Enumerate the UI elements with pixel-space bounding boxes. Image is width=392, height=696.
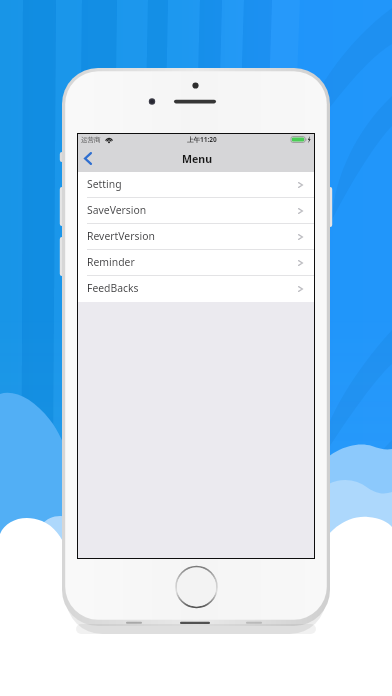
staticText: 上午11:20 — [187, 135, 217, 144]
button[interactable]: FeedBacks — [78, 276, 314, 302]
staticText: FeedBacks — [87, 281, 139, 295]
button[interactable]: Setting — [78, 172, 314, 198]
staticText: Setting — [87, 177, 122, 191]
button[interactable]: Back — [78, 145, 97, 172]
button[interactable]: Reminder — [78, 250, 314, 276]
button[interactable]: SaveVersion — [78, 198, 314, 224]
button[interactable]: RevertVersion — [78, 224, 314, 250]
staticText: Menu — [182, 152, 213, 166]
staticText: 运营商 — [81, 136, 101, 144]
staticText: SaveVersion — [87, 203, 147, 217]
staticText: RevertVersion — [87, 229, 155, 243]
staticText: Reminder — [87, 255, 135, 269]
